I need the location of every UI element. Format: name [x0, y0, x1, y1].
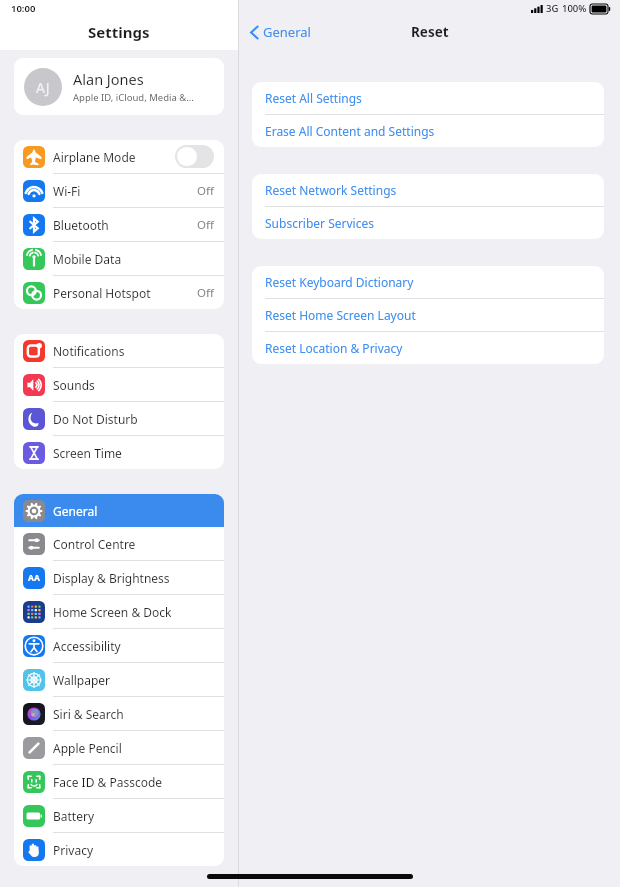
button[interactable]: Reset Network Settings — [252, 174, 604, 206]
staticText: Wallpaper — [53, 672, 214, 688]
staticText: Notifications — [53, 343, 214, 359]
staticText: Airplane Mode — [53, 149, 175, 165]
button[interactable]: Reset Location & Privacy — [252, 332, 604, 364]
staticText: Privacy — [53, 842, 214, 858]
staticText: Erase All Content and Settings — [265, 123, 435, 139]
button[interactable]: Erase All Content and Settings — [252, 115, 604, 147]
staticText: Settings — [88, 22, 150, 42]
button[interactable]: Reset Keyboard Dictionary — [252, 266, 604, 298]
staticText: Accessibility — [53, 638, 214, 654]
staticText: Bluetooth — [53, 217, 197, 233]
staticText: Mobile Data — [53, 251, 214, 267]
staticText: Control Centre — [53, 536, 214, 552]
staticText: General — [53, 503, 214, 519]
staticText: 3G — [546, 2, 559, 15]
staticText: Home Screen & Dock — [53, 604, 214, 620]
staticText: Personal Hotspot — [53, 285, 197, 301]
button[interactable]: Airplane Mode — [14, 140, 224, 173]
staticText: Siri & Search — [53, 706, 214, 722]
button[interactable]: Wallpaper — [14, 663, 224, 696]
button[interactable]: Notifications — [14, 334, 224, 367]
staticText: Wi-Fi — [53, 183, 197, 199]
staticText: Apple Pencil — [53, 740, 214, 756]
button[interactable]: Reset All Settings — [252, 82, 604, 114]
button[interactable]: Screen Time — [14, 436, 224, 469]
staticText: Off — [197, 285, 214, 301]
staticText: Off — [197, 183, 214, 199]
button[interactable]: General — [14, 494, 224, 527]
staticText: 10:00 — [11, 2, 36, 15]
staticText: AA — [28, 572, 40, 584]
button[interactable]: Privacy — [14, 833, 224, 866]
staticText: Battery — [53, 808, 214, 824]
staticText: Subscriber Services — [265, 215, 374, 231]
staticText: Display & Brightness — [53, 570, 214, 586]
staticText: Off — [197, 217, 214, 233]
staticText: Do Not Disturb — [53, 411, 214, 427]
button[interactable]: Subscriber Services — [252, 207, 604, 239]
staticText: Reset Home Screen Layout — [265, 307, 416, 323]
staticText: Reset Network Settings — [265, 182, 397, 198]
button[interactable]: Siri & Search — [14, 697, 224, 730]
button[interactable]: AJ — [14, 58, 224, 115]
button[interactable]: Personal Hotspot — [14, 276, 224, 309]
button[interactable]: Accessibility — [14, 629, 224, 662]
staticText: Reset All Settings — [265, 90, 362, 106]
button[interactable]: Bluetooth — [14, 208, 224, 241]
button[interactable]: Battery — [14, 799, 224, 832]
staticText: Apple ID, iCloud, Media &… — [73, 91, 194, 104]
button[interactable]: Airplane Mode toggle — [175, 145, 214, 168]
button[interactable]: Control Centre — [14, 527, 224, 560]
staticText: Screen Time — [53, 445, 214, 461]
staticText: Face ID & Passcode — [53, 774, 214, 790]
staticText: Reset Location & Privacy — [265, 340, 403, 356]
button[interactable]: Home Screen & Dock — [14, 595, 224, 628]
staticText: Reset Keyboard Dictionary — [265, 274, 414, 290]
button[interactable]: Do Not Disturb — [14, 402, 224, 435]
staticText: Reset — [411, 23, 449, 41]
button[interactable]: Wi-Fi — [14, 174, 224, 207]
button[interactable]: Reset Home Screen Layout — [252, 299, 604, 331]
staticText: Sounds — [53, 377, 214, 393]
button[interactable]: Sounds — [14, 368, 224, 401]
staticText: Alan Jones — [73, 69, 144, 89]
staticText: 100% — [562, 2, 587, 15]
staticText: General — [263, 23, 311, 41]
button[interactable]: Mobile Data — [14, 242, 224, 275]
button[interactable]: Face ID & Passcode — [14, 765, 224, 798]
staticText: AJ — [36, 78, 50, 97]
button[interactable]: General — [247, 21, 314, 43]
button[interactable]: AA — [14, 561, 224, 594]
button[interactable]: Apple Pencil — [14, 731, 224, 764]
